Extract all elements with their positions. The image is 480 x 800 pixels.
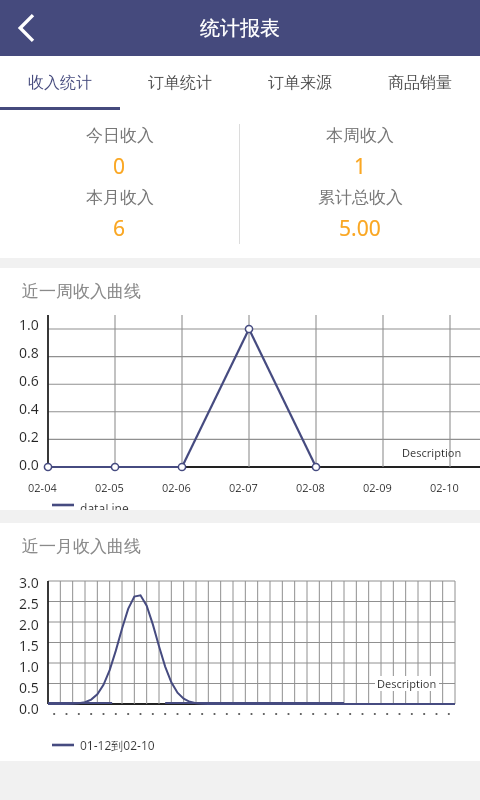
staticText: 3.0 — [19, 573, 39, 592]
staticText: 近一月收入曲线 — [22, 536, 141, 557]
staticText: 2.5 — [19, 594, 39, 613]
staticText: 2.0 — [19, 615, 39, 634]
button[interactable]: 商品销量 — [360, 56, 480, 110]
staticText: 0.2 — [19, 427, 39, 446]
button[interactable]: 订单统计 — [120, 56, 240, 110]
staticText: 本月收入 — [86, 187, 154, 208]
staticText: 1.5 — [19, 636, 39, 655]
staticText: 5.00 — [339, 214, 381, 243]
staticText: 02-06 — [162, 480, 191, 495]
staticText: 近一周收入曲线 — [22, 281, 141, 302]
staticText: 02-04 — [28, 480, 57, 495]
staticText: 订单统计 — [148, 73, 212, 93]
staticText: 01-12到02-10 — [80, 737, 155, 753]
staticText: 6 — [113, 214, 126, 243]
staticText: 02-10 — [430, 480, 459, 495]
staticText: 0.8 — [19, 343, 39, 362]
staticText: 0.4 — [19, 399, 39, 418]
staticText: 1.0 — [19, 315, 39, 334]
staticText: 1.0 — [19, 657, 39, 676]
staticText: 0.0 — [19, 455, 39, 474]
staticText: Description — [377, 676, 437, 691]
button[interactable]: 订单来源 — [240, 56, 360, 110]
button[interactable]: Back — [0, 0, 54, 56]
staticText: 02-09 — [363, 480, 392, 495]
staticText: 1 — [354, 152, 367, 181]
staticText: dataLine — [80, 500, 129, 510]
staticText: 商品销量 — [388, 73, 452, 93]
button[interactable]: 收入统计 — [0, 56, 120, 110]
staticText: 收入统计 — [28, 73, 92, 93]
staticText: 02-07 — [229, 480, 258, 495]
staticText: 订单来源 — [268, 73, 332, 93]
staticText: 0.5 — [19, 678, 39, 697]
staticText: 02-05 — [95, 480, 124, 495]
staticText: 统计报表 — [200, 16, 280, 41]
staticText: 本周收入 — [326, 125, 394, 146]
staticText: 0.6 — [19, 371, 39, 390]
staticText: 02-08 — [296, 480, 325, 495]
staticText: 0 — [113, 152, 126, 181]
staticText: 今日收入 — [86, 125, 154, 146]
staticText: 累计总收入 — [318, 187, 403, 208]
staticText: 0.0 — [19, 699, 39, 718]
staticText: Description — [402, 445, 462, 460]
